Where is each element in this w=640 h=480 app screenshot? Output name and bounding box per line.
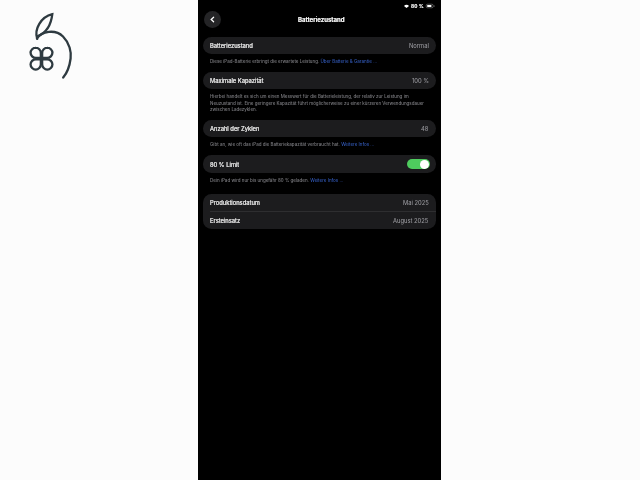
staticText: Anzahl der Zyklen <box>210 125 260 132</box>
staticText: August 2025 <box>393 217 429 224</box>
staticText: Ersteinsatz <box>210 217 241 224</box>
staticText: 100 % <box>412 77 429 84</box>
button[interactable]: Maximale Kapazität <box>203 72 436 89</box>
staticText: Diese iPad-Batterie erbringt die erwarte… <box>210 59 378 64</box>
button[interactable]: Zurück <box>204 11 221 28</box>
staticText: Normal <box>409 42 429 49</box>
staticText: 80 % Limit <box>210 161 240 168</box>
staticText: Produktionsdatum <box>210 199 260 206</box>
staticText: 80 % <box>411 3 424 9</box>
button[interactable]: Produktionsdatum <box>203 194 436 211</box>
staticText: Mai 2025 <box>403 199 429 206</box>
button[interactable]: Batteriezustand <box>203 37 436 54</box>
button[interactable]: Anzahl der Zyklen <box>203 120 436 137</box>
button[interactable]: 80 % Limit umschalten <box>407 159 430 169</box>
staticText: Batteriezustand <box>210 42 253 49</box>
staticText: Batteriezustand <box>298 16 345 23</box>
staticText: Maximale Kapazität <box>210 77 264 84</box>
staticText: Gibt an, wie oft das iPad die Batterieka… <box>210 142 375 147</box>
staticText: Hierbei handelt es sich um einen Messwer… <box>210 94 427 112</box>
button[interactable]: 80 % Limit <box>203 155 436 173</box>
staticText: Dein iPad wird nur bis ungefähr 80 % gel… <box>210 178 344 183</box>
staticText: 48 <box>421 125 429 132</box>
button[interactable]: Ersteinsatz <box>203 212 436 229</box>
